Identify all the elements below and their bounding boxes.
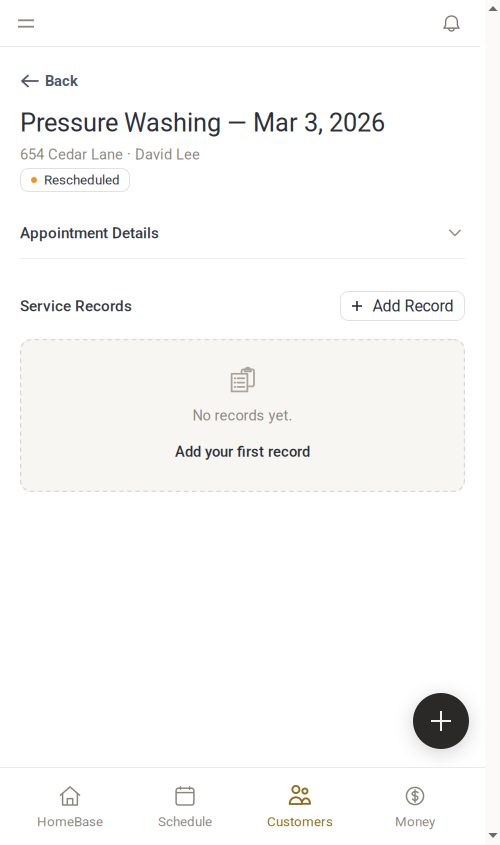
button[interactable]: Schedule (127, 767, 242, 845)
staticText: Schedule (158, 814, 212, 830)
staticText: Rescheduled (44, 172, 120, 188)
button[interactable]: Add Record (340, 291, 465, 321)
staticText: Service Records (20, 297, 132, 315)
staticText: Pressure Washing — Mar 3, 2026 (20, 108, 385, 138)
staticText: Back (45, 72, 78, 90)
staticText: Add your first record (175, 443, 310, 460)
staticText: Appointment Details (20, 224, 159, 242)
button[interactable]: Money (357, 767, 472, 845)
staticText: HomeBase (37, 814, 103, 830)
staticText: No records yet. (192, 407, 292, 424)
button[interactable]: Back (0, 64, 94, 98)
button[interactable]: Appointment Details (0, 211, 485, 255)
button[interactable]: Add (413, 693, 469, 749)
staticText: Add Record (372, 297, 453, 315)
button[interactable]: Customers (242, 767, 357, 845)
staticText: 654 Cedar Lane · David Lee (20, 146, 200, 163)
button[interactable]: HomeBase (12, 767, 127, 845)
staticText: Money (395, 814, 435, 830)
button[interactable]: Add your first record (163, 435, 322, 468)
button[interactable]: Notifications (427, 0, 476, 47)
button[interactable]: Menu (0, 0, 52, 47)
staticText: Customers (267, 814, 333, 830)
